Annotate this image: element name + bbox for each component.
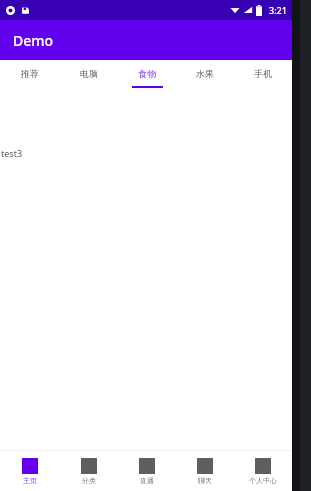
- staticText: 水果: [196, 68, 214, 79]
- staticText: Demo: [13, 31, 54, 50]
- button[interactable]: 手机: [234, 60, 292, 92]
- staticText: 主页: [23, 476, 37, 485]
- staticText: 手机: [254, 68, 272, 79]
- staticText: 推荐: [21, 68, 39, 79]
- staticText: 分类: [82, 476, 96, 485]
- staticText: test3: [1, 147, 23, 159]
- button[interactable]: 主页: [0, 451, 59, 491]
- button[interactable]: 个人中心: [234, 451, 292, 491]
- staticText: 个人中心: [249, 476, 277, 485]
- button[interactable]: 水果: [176, 60, 234, 92]
- button[interactable]: 推荐: [0, 60, 59, 92]
- button[interactable]: 直播: [118, 451, 176, 491]
- staticText: 食物: [138, 68, 156, 79]
- staticText: 3:21: [269, 4, 287, 16]
- staticText: 电脑: [80, 68, 98, 79]
- staticText: 直播: [140, 476, 154, 485]
- button[interactable]: 聊天: [176, 451, 234, 491]
- button[interactable]: 食物: [118, 60, 176, 92]
- staticText: 聊天: [198, 476, 212, 485]
- button[interactable]: 分类: [59, 451, 118, 491]
- button[interactable]: 电脑: [59, 60, 118, 92]
